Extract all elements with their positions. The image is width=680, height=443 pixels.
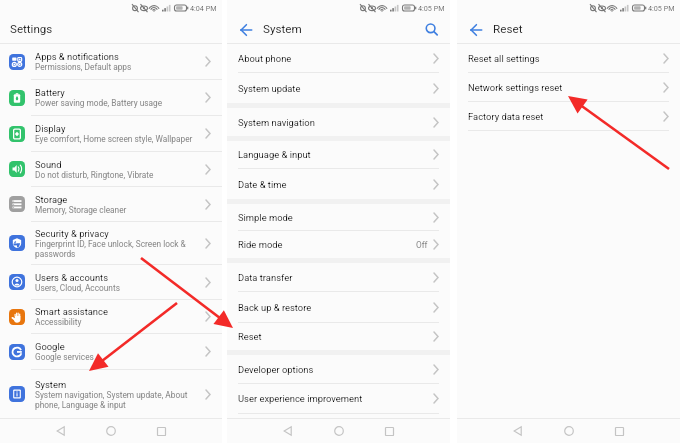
button[interactable]: Search <box>424 22 439 37</box>
button[interactable]: Developer options <box>227 355 450 384</box>
staticText: Reset <box>493 22 523 36</box>
staticText: Google <box>35 341 65 352</box>
staticText: 4:04 PM <box>190 4 217 12</box>
button[interactable]: Back <box>50 420 72 442</box>
button[interactable]: User experience improvement <box>227 384 450 414</box>
staticText: Eye comfort, Home screen style, Wallpape… <box>35 134 193 144</box>
staticText: System <box>263 22 302 36</box>
staticText: Memory, Storage cleaner <box>35 205 127 215</box>
staticText: 4:05 PM <box>418 4 445 12</box>
button[interactable]: Recent apps <box>608 420 630 442</box>
button[interactable]: Back <box>507 420 529 442</box>
staticText: Network settings reset <box>468 82 663 93</box>
staticText: Permissions, Default apps <box>35 62 132 72</box>
button[interactable]: System navigation <box>227 108 450 136</box>
staticText: Fingerprint ID, Face unlock, Screen lock… <box>35 239 186 259</box>
button[interactable]: Data transfer <box>227 263 450 292</box>
staticText: System navigation <box>238 117 433 128</box>
button[interactable]: Recent apps <box>378 420 400 442</box>
button[interactable]: Date & time <box>227 169 450 199</box>
button[interactable]: Sound <box>0 152 222 187</box>
button[interactable]: Network settings reset <box>457 73 680 102</box>
button[interactable]: Home <box>558 420 580 442</box>
button[interactable]: Ride mode <box>227 231 450 258</box>
button[interactable]: Smart assistance <box>0 300 222 334</box>
button[interactable]: System <box>0 370 222 418</box>
button[interactable]: Back <box>277 420 299 442</box>
button[interactable]: Display <box>0 116 222 152</box>
staticText: System <box>35 379 67 390</box>
staticText: Security & privacy <box>35 228 109 239</box>
staticText: Display <box>35 123 66 134</box>
staticText: Smart assistance <box>35 306 108 317</box>
staticText: Developer options <box>238 364 433 375</box>
staticText: About phone <box>238 53 433 64</box>
button[interactable]: Apps & notifications <box>0 44 222 80</box>
staticText: Data transfer <box>238 272 433 283</box>
button[interactable]: Recent apps <box>150 420 172 442</box>
staticText: Power saving mode, Battery usage <box>35 98 163 108</box>
button[interactable]: Navigate up <box>239 23 252 36</box>
button[interactable]: System update <box>227 73 450 103</box>
staticText: Settings <box>10 22 53 36</box>
button[interactable]: Language & input <box>227 141 450 169</box>
button[interactable]: Back up & restore <box>227 292 450 323</box>
staticText: Back up & restore <box>238 302 433 313</box>
button[interactable]: Navigate up <box>469 23 482 36</box>
staticText: Users & accounts <box>35 272 109 283</box>
staticText: Users, Cloud, Accounts <box>35 283 120 293</box>
staticText: Google services <box>35 352 94 362</box>
staticText: Reset <box>238 331 433 342</box>
staticText: System navigation, System update, About … <box>35 390 188 410</box>
button[interactable]: Users & accounts <box>0 265 222 300</box>
button[interactable]: Battery <box>0 80 222 116</box>
button[interactable]: Home <box>100 420 122 442</box>
staticText: 4:05 PM <box>648 4 675 12</box>
staticText: Simple mode <box>238 212 433 223</box>
staticText: Factory data reset <box>468 111 663 122</box>
staticText: System update <box>238 83 433 94</box>
staticText: Storage <box>35 194 68 205</box>
staticText: Ride mode <box>238 239 416 250</box>
button[interactable]: Security & privacy <box>0 222 222 265</box>
staticText: Battery <box>35 87 65 98</box>
button[interactable]: Reset <box>227 323 450 350</box>
staticText: Reset all settings <box>468 53 663 64</box>
staticText: Apps & notifications <box>35 51 119 62</box>
button[interactable]: About phone <box>227 44 450 73</box>
button[interactable]: Storage <box>0 187 222 222</box>
button[interactable]: Factory data reset <box>457 102 680 131</box>
staticText: Do not disturb, Ringtone, Vibrate <box>35 170 154 180</box>
staticText: User experience improvement <box>238 393 433 404</box>
staticText: Off <box>416 240 428 250</box>
button[interactable]: Reset all settings <box>457 44 680 73</box>
staticText: Date & time <box>238 179 433 190</box>
button[interactable]: Simple mode <box>227 204 450 231</box>
staticText: Accessibility <box>35 317 82 327</box>
staticText: Sound <box>35 159 62 170</box>
button[interactable]: Home <box>328 420 350 442</box>
button[interactable]: Google <box>0 334 222 370</box>
staticText: Language & input <box>238 149 433 160</box>
